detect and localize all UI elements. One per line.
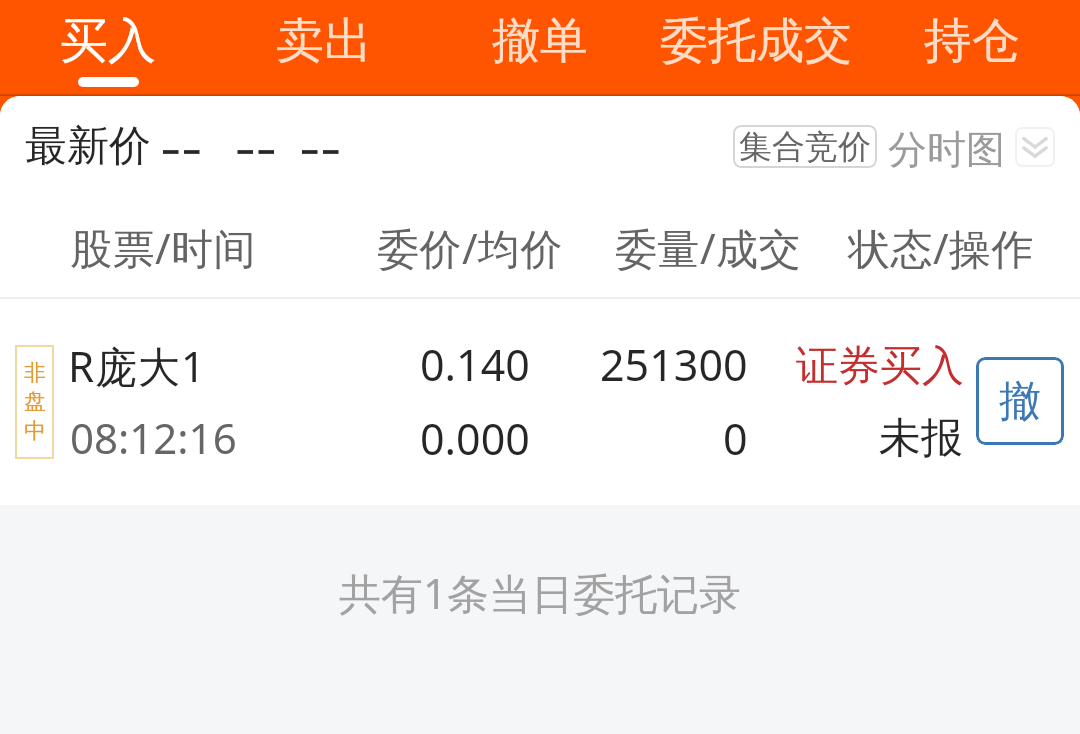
staticText: 买入 xyxy=(60,11,156,71)
staticText: 盘 xyxy=(24,388,46,416)
button[interactable]: 集合竞价 xyxy=(733,125,877,168)
staticText: 撤 xyxy=(999,375,1041,428)
staticText: 持仓 xyxy=(924,11,1020,71)
staticText: 分时图 xyxy=(888,125,1005,168)
staticText: 251300 xyxy=(600,335,748,394)
staticText: 委量/成交 xyxy=(615,219,802,276)
button[interactable]: 委托成交 xyxy=(648,0,864,96)
staticText: 证券买入 xyxy=(796,340,964,393)
button[interactable]: Expand chart xyxy=(1015,127,1055,167)
staticText: 非 xyxy=(24,359,46,387)
staticText: 共有1条当日委托记录 xyxy=(339,564,742,621)
button[interactable]: 分时图 xyxy=(888,125,1005,168)
staticText: 中 xyxy=(24,417,46,445)
staticText: 未报 xyxy=(879,412,963,465)
staticText: 0.140 xyxy=(420,335,530,394)
button[interactable]: 买入 xyxy=(0,0,216,96)
staticText: 状态/操作 xyxy=(848,219,1035,276)
button[interactable]: 撤单 Cancel order xyxy=(976,357,1064,445)
staticText: 0 xyxy=(723,409,748,468)
staticText: R庞大1 xyxy=(68,337,207,394)
staticText: 股票/时间 xyxy=(70,219,257,276)
staticText: 0.000 xyxy=(420,409,530,468)
button[interactable]: 卖出 xyxy=(216,0,432,96)
staticText: 委托成交 xyxy=(660,11,852,71)
staticText: 委价/均价 xyxy=(377,219,564,276)
staticText: 08:12:16 xyxy=(70,409,237,466)
staticText: 最新价 xyxy=(25,120,151,173)
staticText: 撤单 xyxy=(492,11,588,71)
staticText: 集合竞价 xyxy=(739,126,871,168)
staticText: 卖出 xyxy=(276,11,372,71)
button[interactable]: 持仓 xyxy=(864,0,1080,96)
button[interactable]: 撤单 xyxy=(432,0,648,96)
button[interactable]: 非 xyxy=(0,299,1080,505)
